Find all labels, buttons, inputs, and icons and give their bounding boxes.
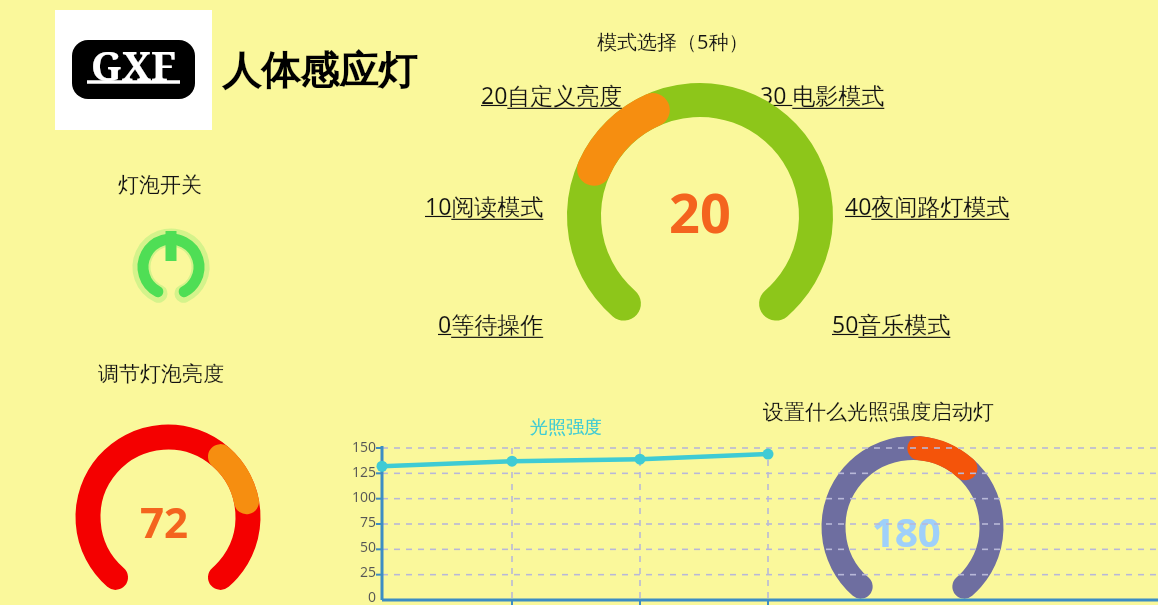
staticText: 72 <box>140 493 189 550</box>
staticText: 25 <box>330 562 376 584</box>
staticText: 30 电影模式 <box>760 79 885 110</box>
staticText: 125 <box>330 462 376 484</box>
staticText: 20 <box>669 175 731 249</box>
staticText: 0 <box>330 587 376 605</box>
staticText: 50音乐模式 <box>832 308 951 339</box>
button[interactable]: Light threshold gauge value 180 <box>810 432 1015 605</box>
button[interactable]: Brightness gauge value 72 <box>68 420 268 600</box>
staticText: 模式选择（5种） <box>597 28 749 55</box>
staticText: 灯泡开关 <box>118 172 202 198</box>
staticText: 150 <box>330 437 376 459</box>
staticText: 180 <box>872 504 941 558</box>
staticText: 75 <box>330 512 376 534</box>
staticText: 调节灯泡亮度 <box>98 361 224 387</box>
staticText: 100 <box>330 487 376 509</box>
staticText: 光照强度 <box>530 416 602 439</box>
staticText: 10阅读模式 <box>425 190 544 221</box>
staticText: 人体感应灯 <box>222 46 417 95</box>
button[interactable]: Power toggle <box>128 220 214 306</box>
button[interactable]: Mode gauge value 20 <box>553 85 847 343</box>
staticText: GXF <box>91 38 176 92</box>
staticText: 40夜间路灯模式 <box>845 190 1010 221</box>
staticText: 设置什么光照强度启动灯 <box>763 399 994 425</box>
staticText: 0等待操作 <box>438 308 544 339</box>
button[interactable]: GXF logo <box>55 10 212 130</box>
staticText: 20自定义亮度 <box>481 79 623 110</box>
staticText: 50 <box>330 537 376 559</box>
